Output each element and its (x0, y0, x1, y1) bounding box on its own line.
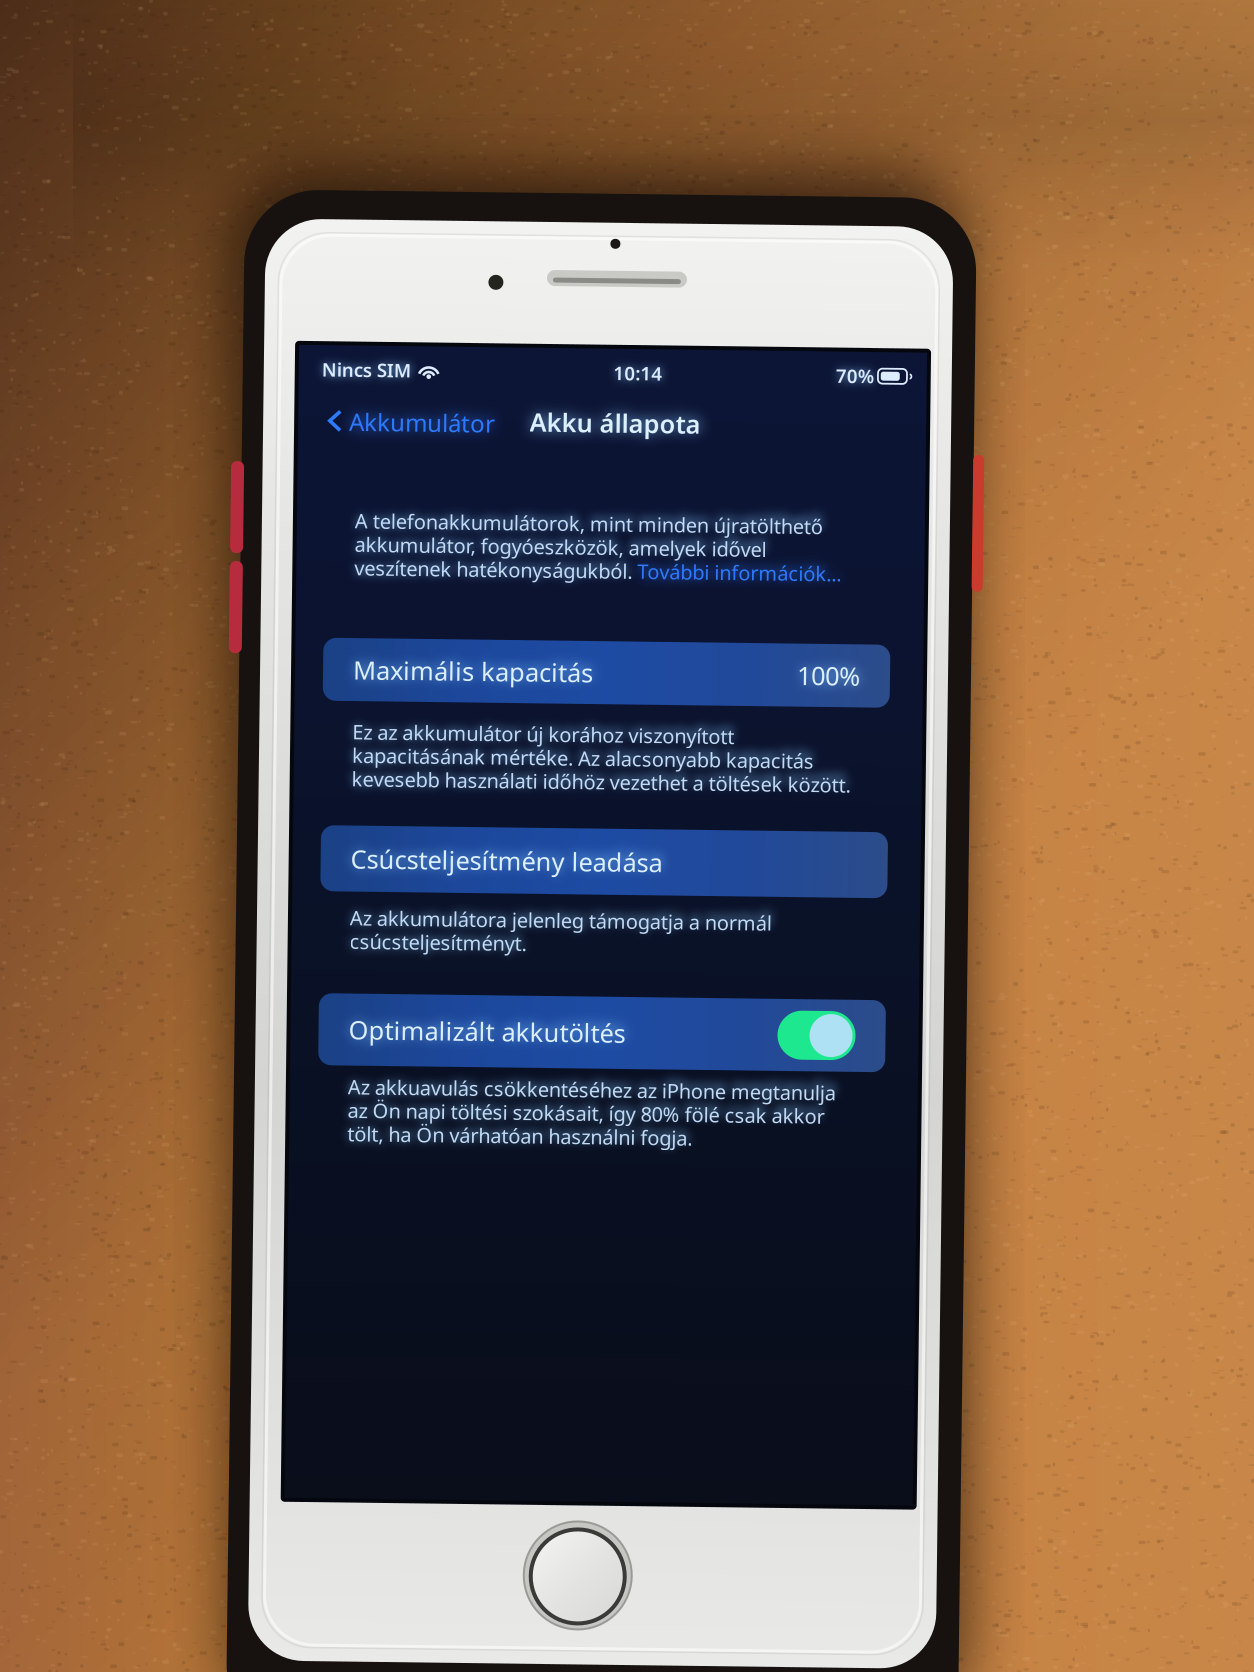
button[interactable]: Akkumulátor (313, 399, 499, 451)
staticText: Ez az akkumulátor új korához viszonyítot… (351, 722, 733, 748)
staticText: veszítenek hatékonyságukból. (351, 558, 634, 584)
staticText: 70% (830, 361, 868, 385)
staticText: tölt, ha Ön várhatóan használni fogja. (351, 1124, 696, 1150)
staticText: Nincs SIM (316, 361, 405, 385)
staticText: 10:14 (607, 361, 656, 385)
staticText: Az akkumulátora jelenleg támogatja a nor… (351, 908, 773, 934)
staticText: 100% (795, 656, 858, 690)
staticText: Akku állapota (524, 406, 695, 440)
staticText: Optimalizált akkutöltés (351, 1016, 628, 1050)
staticText: Csúcsteljesítmény leadása (351, 845, 663, 879)
button[interactable]: Maximális kapacitás (321, 641, 888, 704)
button[interactable]: Optimalizált akkutöltés (780, 1008, 858, 1057)
button[interactable]: Csúcsteljesítmény leadása (321, 829, 888, 895)
staticText: További információk... (634, 558, 838, 584)
staticText: A telefonakkumulátorok, mint minden újra… (351, 511, 819, 537)
staticText: Maximális kapacitás (351, 656, 591, 690)
staticText: csúcsteljesítményt. (351, 931, 528, 958)
button[interactable]: További információk... (634, 559, 838, 583)
staticText: akkumulátor, fogyóeszközök, amelyek időv… (351, 534, 763, 561)
staticText: kevesebb használati időhöz vezethet a tö… (351, 769, 850, 795)
staticText: Az akkuavulás csökkentéséhez az iPhone m… (351, 1077, 839, 1103)
staticText: kapacitásának mértéke. Az alacsonyabb ka… (351, 745, 813, 772)
staticText: Akkumulátor (344, 409, 490, 441)
staticText: az Ön napi töltési szokásait, így 80% fö… (351, 1100, 828, 1127)
